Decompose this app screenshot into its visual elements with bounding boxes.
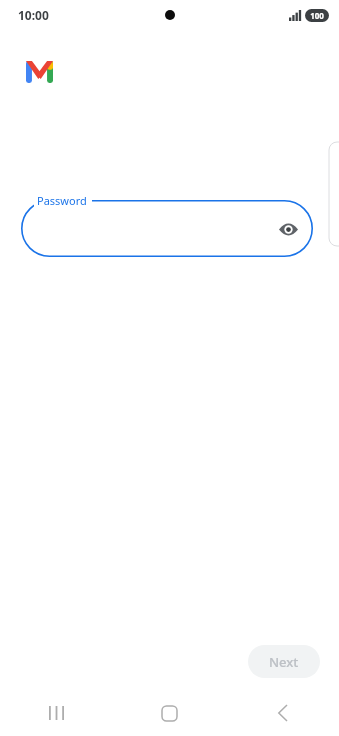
- staticText: Password: [37, 193, 87, 208]
- button[interactable]: Back: [226, 690, 339, 736]
- button[interactable]: Home: [113, 690, 226, 736]
- button[interactable]: Password: [21, 200, 313, 257]
- staticText: 100: [310, 10, 324, 21]
- button[interactable]: Show password: [276, 217, 300, 241]
- button[interactable]: Recents: [0, 690, 113, 736]
- button[interactable]: Next: [248, 645, 320, 678]
- staticText: Next: [269, 653, 299, 671]
- staticText: 10:00: [18, 7, 49, 23]
